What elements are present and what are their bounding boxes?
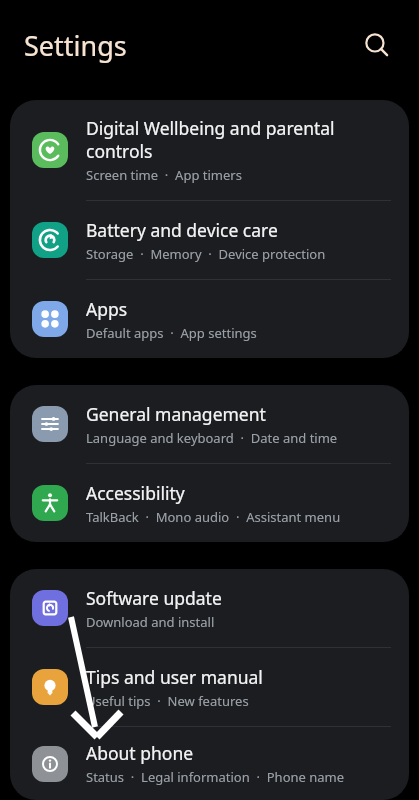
button[interactable]: Accessibility	[10, 464, 409, 542]
button[interactable]: Search	[355, 23, 399, 67]
staticText: General management	[86, 402, 266, 426]
button[interactable]: Battery and device care	[10, 201, 409, 279]
button[interactable]: Digital Wellbeing and parental controls	[10, 100, 409, 200]
staticText: Status · Legal information · Phone name	[86, 768, 345, 786]
staticText: Settings	[24, 27, 127, 64]
staticText: Default apps · App settings	[86, 324, 257, 342]
staticText: Tips and user manual	[86, 665, 263, 689]
staticText: About phone	[86, 741, 194, 765]
button[interactable]: General management	[10, 385, 409, 463]
staticText: Accessibility	[86, 481, 185, 505]
staticText: Download and install	[86, 613, 215, 631]
staticText: TalkBack · Mono audio · Assistant menu	[86, 508, 341, 526]
staticText: Battery and device care	[86, 218, 278, 242]
staticText: Screen time · App timers	[86, 166, 242, 184]
staticText: Language and keyboard · Date and time	[86, 429, 338, 447]
button[interactable]: About phone	[10, 727, 409, 800]
staticText: Useful tips · New features	[86, 692, 249, 710]
button[interactable]: Tips and user manual	[10, 648, 409, 726]
button[interactable]: Software update	[10, 569, 409, 647]
staticText: Storage · Memory · Device protection	[86, 245, 326, 263]
staticText: Apps	[86, 297, 128, 321]
staticText: Software update	[86, 586, 222, 610]
button[interactable]: Apps	[10, 280, 409, 358]
staticText: Digital Wellbeing and parental controls	[86, 116, 335, 163]
